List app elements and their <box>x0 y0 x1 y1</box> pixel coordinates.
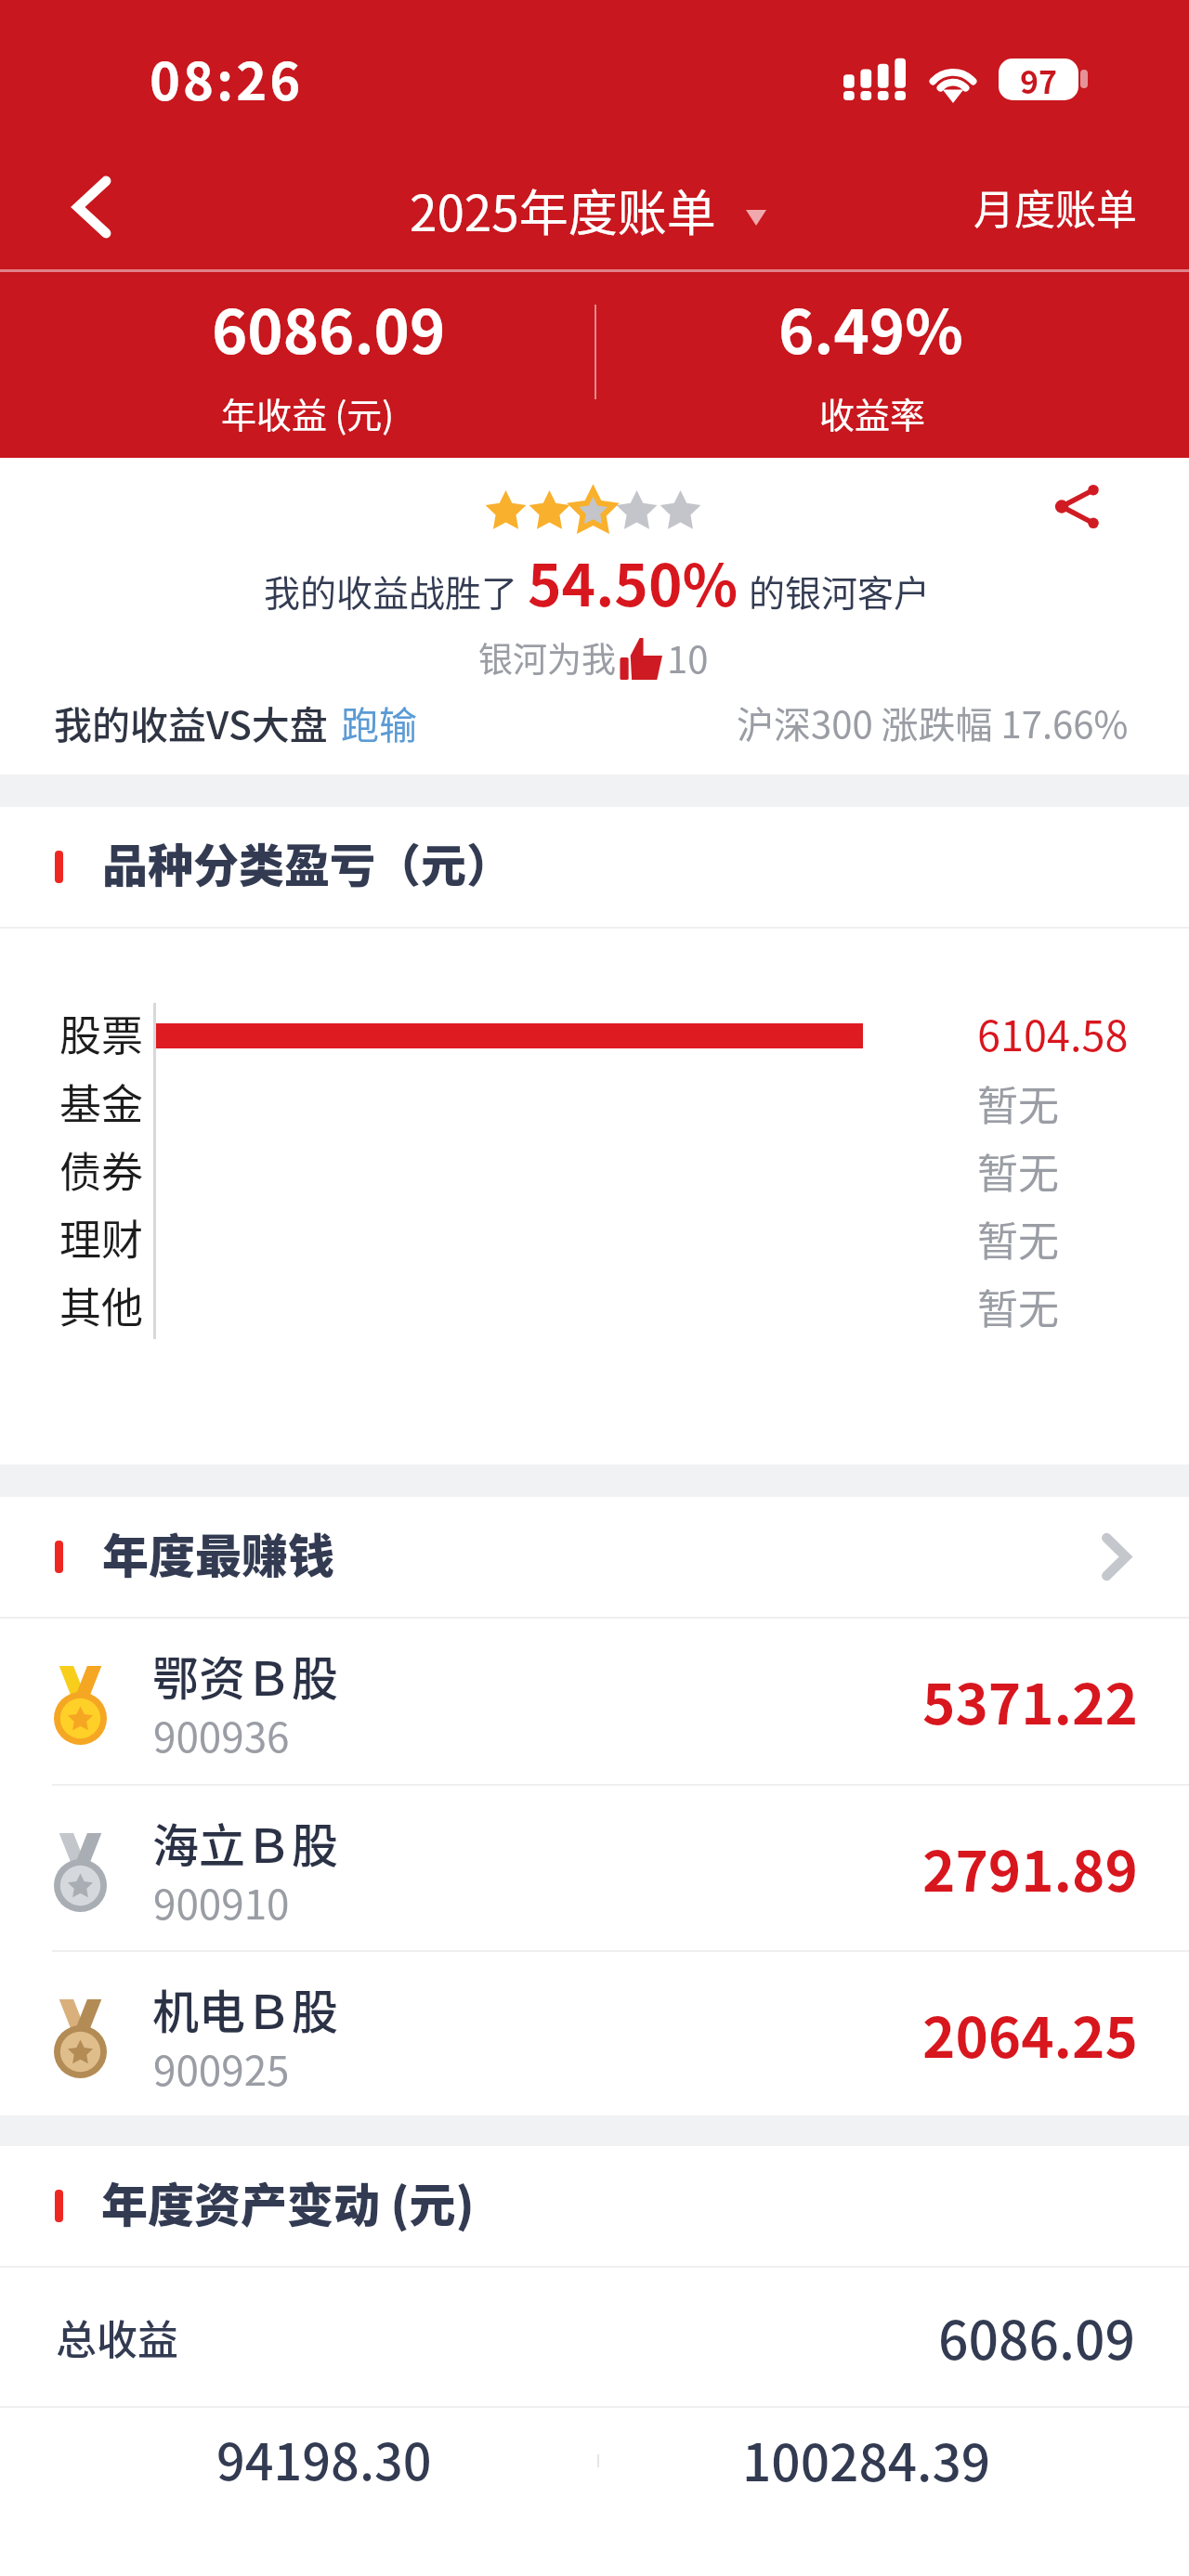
staticText: 暂无 <box>977 1209 1059 1268</box>
staticText: 收益率 <box>819 387 926 438</box>
staticText: 银河为我 <box>478 632 616 683</box>
staticText: 海立Ｂ股 <box>152 1809 338 1876</box>
staticText: 900910 <box>153 1872 290 1932</box>
staticText: 暂无 <box>977 1141 1059 1201</box>
button[interactable]: 月度账单 <box>957 157 1154 257</box>
staticText: 机电Ｂ股 <box>152 1975 338 2042</box>
staticText: 跑输 <box>341 695 417 749</box>
staticText: 5371.22 <box>922 1659 1138 1740</box>
staticText: 基金 <box>59 1072 144 1132</box>
staticText: 理财 <box>59 1207 144 1268</box>
button[interactable]: 海立Ｂ股 <box>0 1786 1189 1950</box>
staticText: 6086.09 <box>212 284 446 371</box>
staticText: 年度资产变动 (元) <box>101 2168 475 2235</box>
staticText: 54.50% <box>528 540 738 623</box>
staticText: 其他 <box>59 1275 144 1335</box>
staticText: 总收益 <box>56 2308 178 2367</box>
staticText: 年度最赚钱 <box>102 1519 334 1586</box>
staticText: 10 <box>667 631 709 684</box>
button[interactable]: 鄂资Ｂ股 <box>0 1619 1189 1784</box>
staticText: 沪深300 涨跌幅 17.66% <box>737 696 1129 749</box>
staticText: 我的收益VS大盘 <box>54 695 328 749</box>
staticText: 股票 <box>59 1003 144 1063</box>
staticText: 品种分类盈亏（元） <box>102 829 513 895</box>
staticText: 900925 <box>153 2038 290 2098</box>
staticText: 2025年度账单 <box>410 175 716 246</box>
staticText: 6104.58 <box>977 1003 1129 1063</box>
staticText: 6086.09 <box>938 2298 1135 2375</box>
button[interactable]: 年度最赚钱 <box>0 1497 1189 1617</box>
staticText: 97 <box>1020 59 1058 99</box>
staticText: 债券 <box>59 1139 144 1200</box>
button[interactable]: Share <box>1033 462 1121 551</box>
staticText: 2791.89 <box>922 1827 1138 1907</box>
staticText: 年收益 (元) <box>221 387 395 438</box>
staticText: 100284.39 <box>742 2422 991 2496</box>
button[interactable]: 机电Ｂ股 <box>0 1952 1189 2115</box>
staticText: 暂无 <box>977 1073 1059 1133</box>
staticText: 鄂资Ｂ股 <box>152 1642 338 1709</box>
staticText: 月度账单 <box>973 177 1137 237</box>
staticText: 2064.25 <box>922 1993 1138 2074</box>
staticText: 我的收益战胜了 <box>264 565 518 617</box>
staticText: 94198.30 <box>216 2422 432 2494</box>
staticText: 08:26 <box>150 40 304 115</box>
staticText: 6.49% <box>778 284 963 371</box>
staticText: 的银河客户 <box>749 565 931 617</box>
staticText: 900936 <box>153 1705 290 1764</box>
staticText: 暂无 <box>977 1277 1059 1336</box>
button[interactable]: Back <box>32 145 152 269</box>
